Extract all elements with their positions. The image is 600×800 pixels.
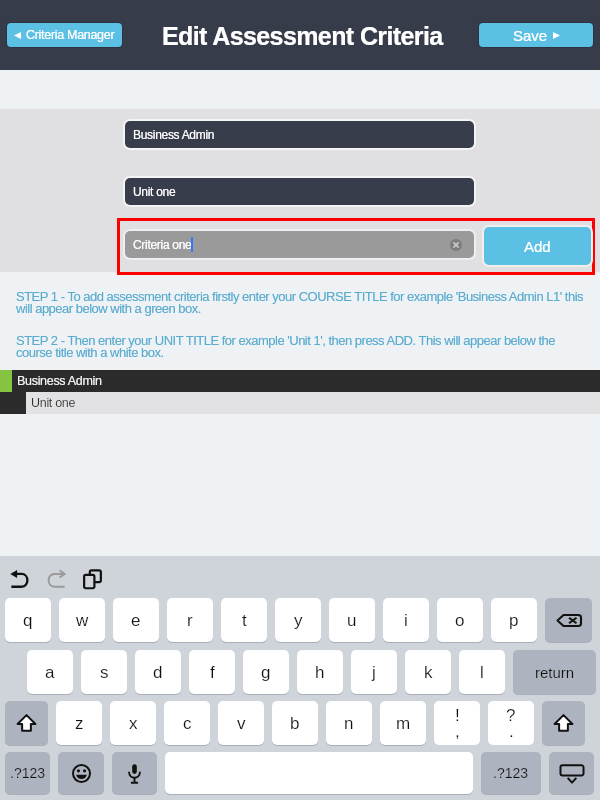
staticText: h bbox=[315, 663, 325, 682]
button[interactable]: d bbox=[135, 650, 181, 694]
button[interactable]: u bbox=[329, 598, 375, 642]
staticText: d bbox=[153, 663, 163, 682]
button[interactable]: Voice input bbox=[112, 752, 157, 794]
staticText: i bbox=[404, 611, 408, 630]
button[interactable]: Emoji bbox=[58, 752, 104, 794]
button[interactable]: Business Admin bbox=[125, 121, 474, 148]
button[interactable]: p bbox=[491, 598, 537, 642]
staticText: b bbox=[290, 714, 300, 733]
button[interactable]: Unit one bbox=[125, 178, 474, 205]
button[interactable]: Shift bbox=[5, 701, 48, 745]
staticText: Criteria Manager bbox=[26, 28, 115, 42]
button[interactable]: .?123 bbox=[481, 752, 541, 794]
button[interactable]: Undo bbox=[4, 563, 36, 595]
button[interactable]: a bbox=[27, 650, 73, 694]
button[interactable]: x bbox=[110, 701, 156, 745]
staticText: c bbox=[183, 714, 192, 733]
staticText: Save bbox=[513, 27, 548, 44]
button[interactable]: v bbox=[218, 701, 264, 745]
staticText: Business Admin bbox=[133, 128, 215, 141]
button[interactable]: Save bbox=[479, 23, 593, 47]
button[interactable]: i bbox=[383, 598, 429, 642]
staticText: s bbox=[100, 663, 109, 682]
button[interactable]: q bbox=[5, 598, 51, 642]
button[interactable]: y bbox=[275, 598, 321, 642]
button[interactable]: w bbox=[59, 598, 105, 642]
button[interactable]: Add bbox=[484, 227, 591, 265]
staticText: Unit one bbox=[31, 396, 76, 410]
button[interactable]: f bbox=[189, 650, 235, 694]
button[interactable]: Criteria one bbox=[125, 231, 474, 258]
button[interactable]: Shift bbox=[542, 701, 585, 745]
button[interactable]: n bbox=[326, 701, 372, 745]
staticText: Criteria one bbox=[133, 238, 192, 251]
button[interactable]: l bbox=[459, 650, 505, 694]
button[interactable]: .?123 bbox=[5, 752, 50, 794]
staticText: Add bbox=[524, 238, 551, 255]
staticText: l bbox=[480, 663, 484, 682]
button[interactable]: b bbox=[272, 701, 318, 745]
staticText: .?123 bbox=[493, 765, 529, 781]
staticText: Business Admin bbox=[17, 374, 102, 388]
staticText: ! bbox=[455, 706, 460, 725]
staticText: x bbox=[129, 714, 138, 733]
staticText: o bbox=[455, 611, 465, 630]
staticText: Unit one bbox=[133, 185, 176, 198]
staticText: g bbox=[261, 663, 271, 682]
button[interactable]: k bbox=[405, 650, 451, 694]
button[interactable]: return bbox=[513, 650, 596, 694]
button[interactable]: o bbox=[437, 598, 483, 642]
staticText: z bbox=[75, 714, 84, 733]
button[interactable]: h bbox=[297, 650, 343, 694]
button[interactable]: e bbox=[113, 598, 159, 642]
button[interactable]: m bbox=[380, 701, 426, 745]
button[interactable]: s bbox=[81, 650, 127, 694]
button[interactable]: Backspace bbox=[545, 598, 592, 642]
button[interactable]: j bbox=[351, 650, 397, 694]
button[interactable]: Redo bbox=[40, 563, 72, 595]
staticText: m bbox=[396, 714, 411, 733]
button[interactable]: ! bbox=[434, 701, 480, 745]
staticText: , bbox=[455, 722, 460, 741]
staticText: w bbox=[76, 611, 89, 630]
staticText: q bbox=[23, 611, 33, 630]
button[interactable]: z bbox=[56, 701, 102, 745]
button[interactable]: Hide keyboard bbox=[549, 752, 594, 794]
staticText: u bbox=[347, 611, 357, 630]
staticText: t bbox=[242, 611, 247, 630]
staticText: ? bbox=[506, 706, 516, 725]
staticText: v bbox=[237, 714, 246, 733]
button[interactable]: Criteria Manager bbox=[7, 23, 122, 47]
button[interactable]: Paste bbox=[76, 563, 108, 595]
button[interactable]: g bbox=[243, 650, 289, 694]
staticText: p bbox=[509, 611, 519, 630]
staticText: n bbox=[344, 714, 354, 733]
staticText: . bbox=[509, 722, 514, 741]
button[interactable]: ? bbox=[488, 701, 534, 745]
staticText: STEP 1 - To add assessment criteria firs… bbox=[16, 289, 590, 316]
button[interactable]: c bbox=[164, 701, 210, 745]
staticText: Edit Assessment Criteria bbox=[162, 22, 443, 50]
staticText: j bbox=[372, 663, 376, 682]
staticText: return bbox=[535, 664, 575, 681]
staticText: y bbox=[294, 611, 303, 630]
button[interactable]: t bbox=[221, 598, 267, 642]
staticText: k bbox=[424, 663, 433, 682]
staticText: f bbox=[210, 663, 215, 682]
staticText: .?123 bbox=[10, 765, 46, 781]
button[interactable]: Clear text bbox=[449, 238, 463, 252]
staticText: r bbox=[187, 611, 193, 630]
staticText: STEP 2 - Then enter your UNIT TITLE for … bbox=[16, 333, 590, 360]
button[interactable]: r bbox=[167, 598, 213, 642]
staticText: a bbox=[45, 663, 55, 682]
staticText: e bbox=[131, 611, 141, 630]
